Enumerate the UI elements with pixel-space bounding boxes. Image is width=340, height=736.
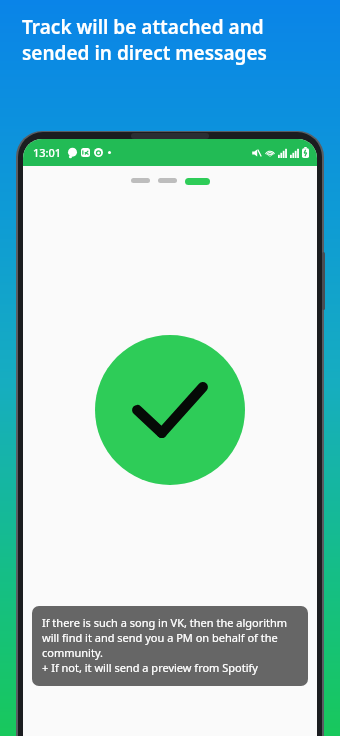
button[interactable] xyxy=(185,178,210,185)
staticText: 13:01 xyxy=(33,145,62,160)
staticText: Track will be attached and xyxy=(22,14,264,40)
staticText: If there is such a song in VK, then the … xyxy=(42,615,298,675)
button[interactable]: Success xyxy=(95,335,245,485)
button[interactable] xyxy=(131,178,150,183)
button[interactable]: If there is such a song in VK, then the … xyxy=(32,606,308,686)
button[interactable] xyxy=(158,178,177,183)
staticText: sended in direct messages xyxy=(22,40,267,66)
